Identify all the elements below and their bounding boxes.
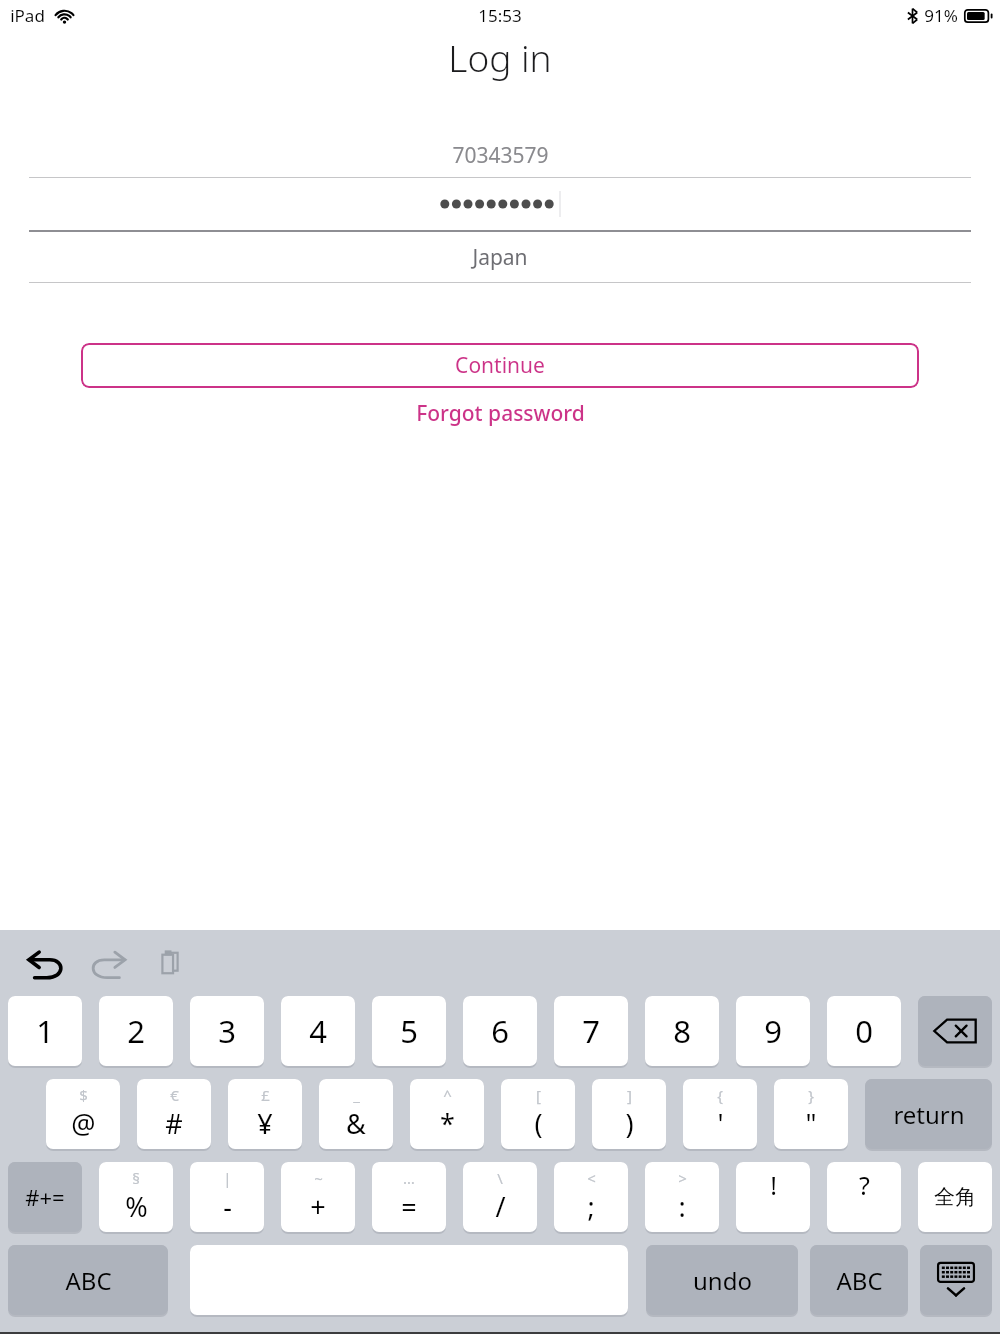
staticText: \ bbox=[497, 1168, 503, 1188]
staticText: 全角 bbox=[934, 1184, 976, 1210]
staticText: ~ bbox=[314, 1168, 323, 1188]
button[interactable]: 2 bbox=[99, 996, 173, 1066]
staticText: undo bbox=[693, 1264, 752, 1297]
staticText: ; bbox=[587, 1188, 595, 1225]
button[interactable]: 7 bbox=[554, 996, 628, 1066]
button[interactable]: < bbox=[554, 1162, 628, 1232]
button[interactable]: 6 bbox=[463, 996, 537, 1066]
button[interactable]: > bbox=[645, 1162, 719, 1232]
button[interactable]: ? bbox=[827, 1162, 901, 1232]
staticText: : bbox=[678, 1188, 686, 1225]
staticText: £ bbox=[261, 1085, 270, 1105]
staticText: 6 bbox=[491, 1010, 509, 1052]
staticText: iPad bbox=[10, 4, 45, 27]
button[interactable]: £ bbox=[228, 1079, 302, 1149]
staticText: € bbox=[170, 1085, 179, 1105]
staticText: ? bbox=[859, 1168, 870, 1202]
staticText: _ bbox=[353, 1085, 360, 1105]
button[interactable]: Paste bbox=[140, 940, 200, 986]
staticText: % bbox=[125, 1188, 148, 1225]
staticText: " bbox=[805, 1105, 817, 1142]
staticText: Log in bbox=[448, 32, 552, 82]
staticText: ABC bbox=[836, 1264, 883, 1297]
button[interactable]: 70343579 bbox=[0, 133, 1000, 177]
staticText: # bbox=[165, 1105, 183, 1142]
staticText: + bbox=[310, 1188, 326, 1225]
button[interactable]: 3 bbox=[190, 996, 264, 1066]
staticText: ¥ bbox=[257, 1105, 273, 1142]
button[interactable]: Undo bbox=[16, 940, 76, 986]
staticText: 2 bbox=[127, 1010, 145, 1052]
button[interactable]: Japan bbox=[0, 232, 1000, 282]
staticText: 1 bbox=[36, 1010, 54, 1052]
staticText: - bbox=[223, 1188, 232, 1225]
button[interactable]: 9 bbox=[736, 996, 810, 1066]
button[interactable]: ] bbox=[592, 1079, 666, 1149]
button[interactable]: 5 bbox=[372, 996, 446, 1066]
button[interactable]: Delete bbox=[918, 996, 992, 1066]
button[interactable]: ^ bbox=[410, 1079, 484, 1149]
button[interactable]: | bbox=[190, 1162, 264, 1232]
staticText: } bbox=[808, 1085, 814, 1105]
staticText: 9 bbox=[764, 1010, 782, 1052]
staticText: 70343579 bbox=[452, 141, 549, 170]
button[interactable]: return bbox=[865, 1079, 992, 1149]
staticText: 4 bbox=[309, 1010, 327, 1052]
button[interactable]: 4 bbox=[281, 996, 355, 1066]
staticText: ^ bbox=[443, 1085, 452, 1105]
button[interactable] bbox=[0, 178, 1000, 230]
staticText: #+= bbox=[25, 1182, 65, 1212]
staticText: 8 bbox=[673, 1010, 691, 1052]
button[interactable]: Forgot password bbox=[416, 399, 585, 428]
staticText: ( bbox=[534, 1105, 543, 1142]
staticText: = bbox=[401, 1188, 417, 1225]
staticText: [ bbox=[536, 1085, 541, 1105]
button[interactable]: § bbox=[99, 1162, 173, 1232]
button[interactable]: } bbox=[774, 1079, 848, 1149]
button[interactable]: ABC bbox=[8, 1245, 168, 1315]
staticText: ' bbox=[717, 1105, 724, 1142]
staticText: & bbox=[346, 1105, 366, 1142]
button[interactable]: undo bbox=[646, 1245, 798, 1315]
staticText: ABC bbox=[65, 1264, 112, 1297]
button[interactable]: [ bbox=[501, 1079, 575, 1149]
button[interactable]: Hide keyboard bbox=[920, 1245, 992, 1315]
button[interactable]: #+= bbox=[8, 1162, 82, 1232]
staticText: … bbox=[403, 1168, 415, 1188]
staticText: § bbox=[132, 1168, 140, 1188]
staticText: 91% bbox=[924, 4, 958, 27]
staticText: > bbox=[678, 1168, 687, 1188]
staticText: 0 bbox=[855, 1010, 873, 1052]
staticText: < bbox=[587, 1168, 596, 1188]
button[interactable]: $ bbox=[46, 1079, 120, 1149]
button[interactable]: € bbox=[137, 1079, 211, 1149]
staticText: | bbox=[223, 1168, 232, 1188]
button[interactable]: 0 bbox=[827, 996, 901, 1066]
button[interactable]: 8 bbox=[645, 996, 719, 1066]
staticText: ] bbox=[627, 1085, 632, 1105]
button[interactable]: ~ bbox=[281, 1162, 355, 1232]
staticText: 3 bbox=[218, 1010, 236, 1052]
button[interactable]: Redo bbox=[78, 940, 138, 986]
button[interactable]: ABC bbox=[810, 1245, 908, 1315]
button[interactable]: _ bbox=[319, 1079, 393, 1149]
button[interactable]: ! bbox=[736, 1162, 810, 1232]
button[interactable]: 全角 bbox=[918, 1162, 992, 1232]
staticText: ) bbox=[625, 1105, 634, 1142]
button[interactable]: Continue bbox=[81, 343, 919, 388]
staticText: 15:53 bbox=[478, 4, 522, 27]
staticText: 7 bbox=[582, 1010, 600, 1052]
staticText: ! bbox=[770, 1168, 777, 1202]
button[interactable]: 1 bbox=[8, 996, 82, 1066]
button[interactable]: … bbox=[372, 1162, 446, 1232]
button[interactable]: { bbox=[683, 1079, 757, 1149]
staticText: { bbox=[717, 1085, 723, 1105]
staticText: 5 bbox=[400, 1010, 418, 1052]
staticText: @ bbox=[71, 1105, 96, 1142]
button[interactable]: \ bbox=[463, 1162, 537, 1232]
staticText: * bbox=[440, 1105, 455, 1142]
staticText: / bbox=[495, 1188, 506, 1225]
